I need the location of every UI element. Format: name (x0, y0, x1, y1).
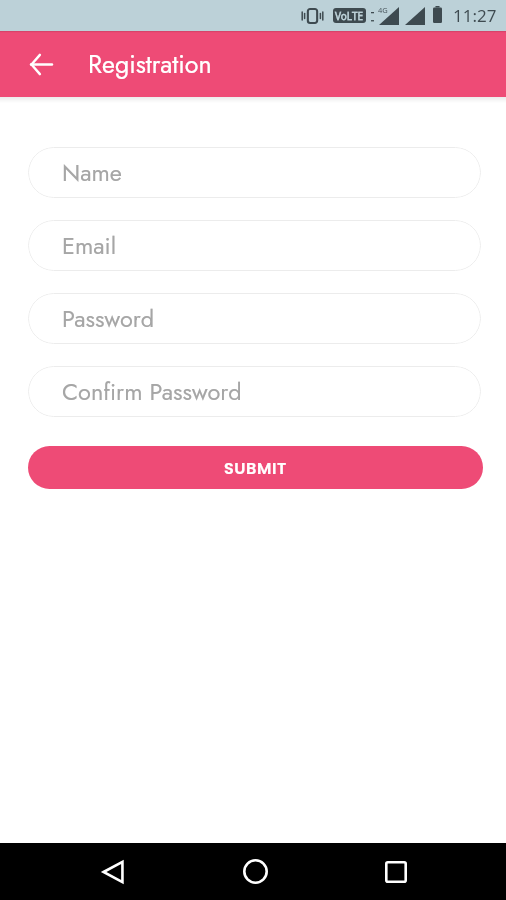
staticText: 11:27 (453, 4, 497, 27)
button[interactable]: Home (224, 843, 286, 900)
staticText: Confirm Password (62, 375, 242, 409)
button[interactable]: Email (28, 220, 481, 271)
button[interactable]: SUBMIT (28, 446, 483, 489)
button[interactable]: Back (17, 41, 64, 88)
button[interactable]: Password (28, 293, 481, 344)
staticText: SUBMIT (224, 457, 287, 479)
button[interactable]: Recents (365, 843, 427, 900)
staticText: Email (62, 229, 117, 263)
staticText: 4G (378, 5, 388, 15)
staticText: Name (62, 156, 122, 190)
button[interactable]: Name (28, 147, 481, 198)
staticText: Registration (88, 46, 212, 82)
button[interactable]: Confirm Password (28, 366, 481, 417)
button[interactable]: Back (82, 843, 144, 900)
staticText: VoLTE (335, 9, 364, 23)
staticText: Password (62, 302, 155, 336)
